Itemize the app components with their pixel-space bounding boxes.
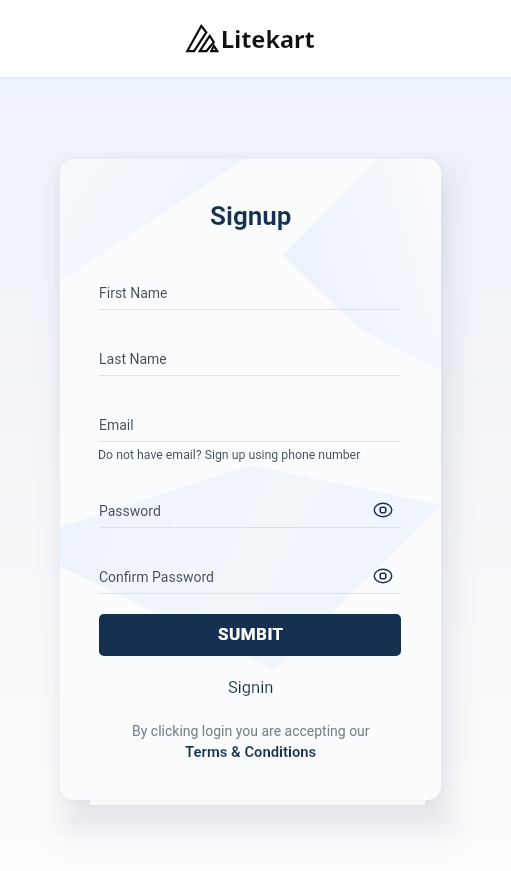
button[interactable]: Password: [99, 501, 401, 528]
staticText: Signin: [228, 678, 274, 697]
button[interactable]: Email: [99, 415, 401, 442]
button[interactable]: Show password: [371, 564, 395, 588]
button[interactable]: Show password: [371, 498, 395, 522]
button[interactable]: Last Name: [99, 349, 401, 376]
staticText: First Name: [99, 285, 168, 301]
staticText: Terms & Conditions: [185, 743, 317, 760]
button[interactable]: Confirm Password: [99, 567, 401, 594]
staticText: SUMBIT: [218, 624, 284, 644]
button[interactable]: Signin: [224, 674, 276, 698]
staticText: Confirm Password: [99, 569, 214, 585]
staticText: Do not have email? Sign up using phone n…: [98, 448, 361, 462]
staticText: Email: [99, 417, 134, 433]
staticText: By clicking login you are accepting our: [132, 723, 370, 739]
staticText: Last Name: [99, 351, 167, 367]
staticText: Litekart: [221, 23, 315, 55]
staticText: Password: [99, 503, 161, 519]
button[interactable]: Litekart home: [180, 18, 320, 60]
button[interactable]: First Name: [99, 283, 401, 310]
staticText: Signup: [210, 201, 292, 231]
button[interactable]: SUMBIT: [99, 614, 401, 656]
button[interactable]: Terms & Conditions: [183, 741, 319, 763]
